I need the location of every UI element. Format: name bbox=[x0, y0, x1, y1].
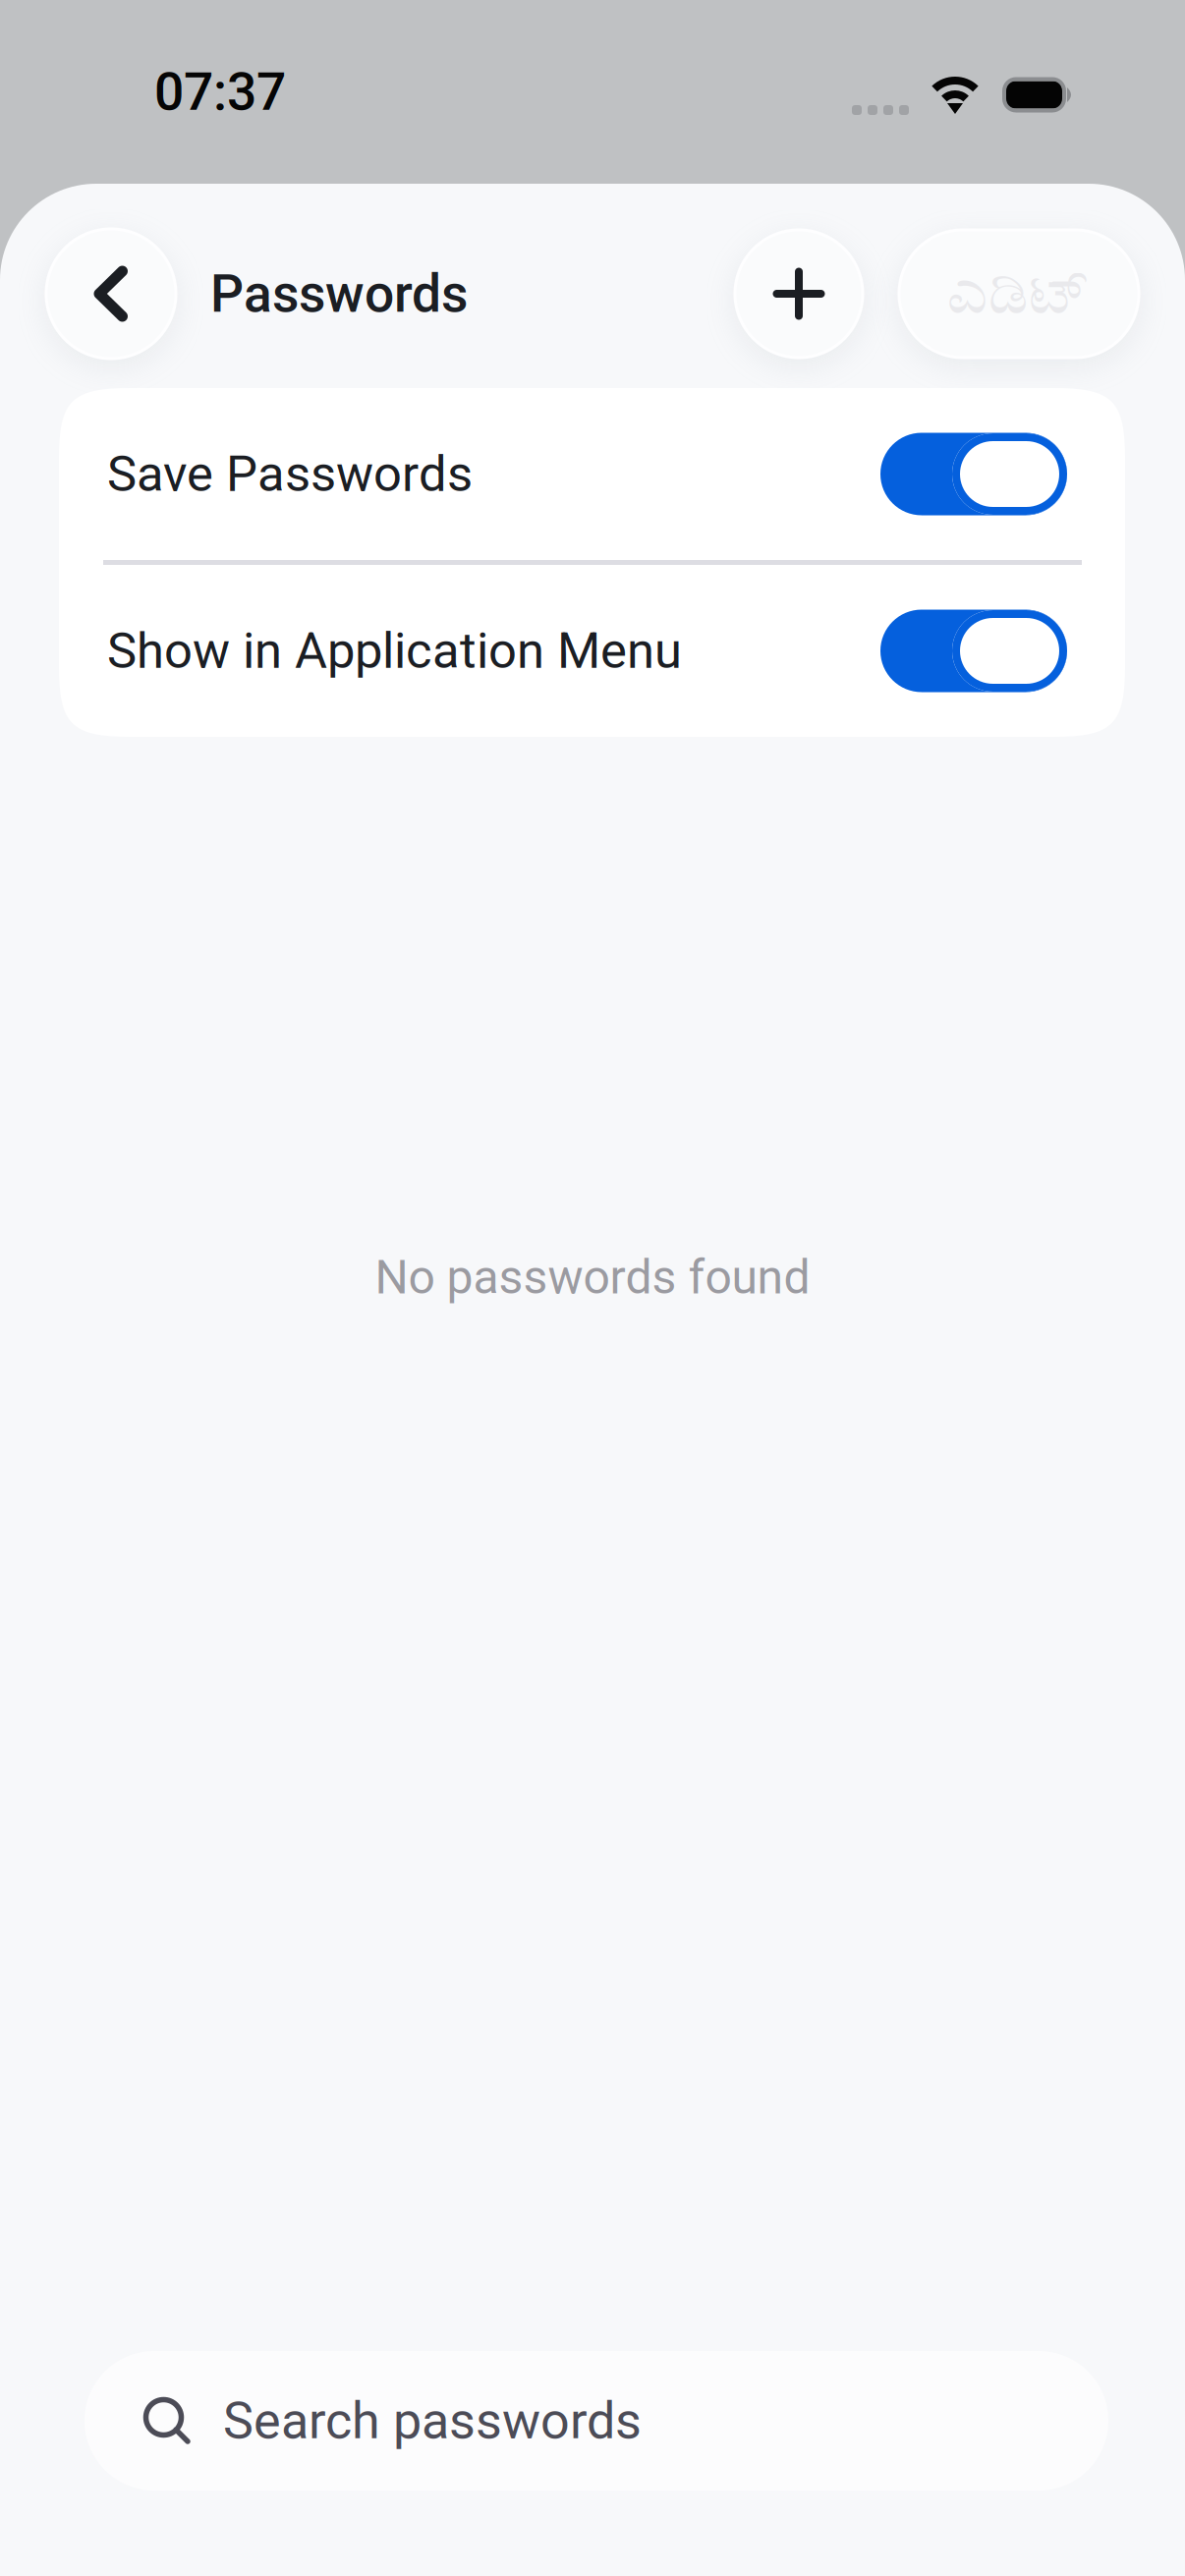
button[interactable]: Edit bbox=[899, 230, 1139, 358]
staticText: ಎಡಿಟ್ bbox=[947, 262, 1091, 326]
button[interactable]: Add password bbox=[735, 230, 863, 358]
button[interactable]: Save Passwords bbox=[59, 388, 1125, 560]
staticText: No passwords found bbox=[375, 1250, 810, 1305]
staticText: Save Passwords bbox=[107, 445, 473, 503]
staticText: Show in Application Menu bbox=[107, 622, 682, 680]
staticText: Search passwords bbox=[223, 2391, 642, 2451]
button[interactable]: Show in Application Menu bbox=[59, 565, 1125, 737]
staticText: Passwords bbox=[210, 263, 468, 325]
button[interactable]: Search passwords bbox=[85, 2351, 1108, 2491]
button[interactable]: Back bbox=[46, 229, 176, 359]
staticText: 07:37 bbox=[154, 61, 286, 123]
